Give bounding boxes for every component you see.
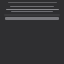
button[interactable]: Primary action: [5, 17, 59, 20]
button[interactable]: Header: [2, 1, 62, 4]
button[interactable]: Content: [2, 9, 62, 12]
